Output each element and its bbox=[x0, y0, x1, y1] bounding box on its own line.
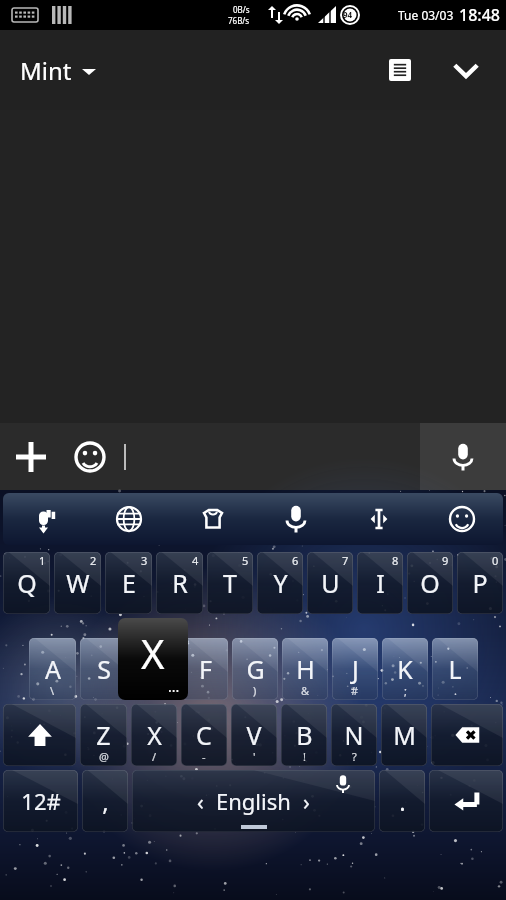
staticText: English bbox=[216, 786, 291, 816]
button[interactable]: W bbox=[54, 552, 101, 614]
staticText: 94 bbox=[343, 9, 353, 20]
button[interactable]: Add bbox=[0, 426, 62, 488]
staticText: R bbox=[172, 566, 188, 600]
staticText: , bbox=[102, 785, 109, 818]
staticText: ? bbox=[352, 749, 357, 764]
button[interactable]: U bbox=[307, 552, 353, 614]
staticText: S bbox=[97, 652, 111, 686]
button[interactable]: T bbox=[207, 552, 253, 614]
staticText: V bbox=[246, 718, 262, 752]
staticText: ; bbox=[404, 683, 407, 698]
button[interactable]: 12# bbox=[3, 770, 78, 832]
button[interactable]: X bbox=[131, 704, 177, 766]
staticText: @ bbox=[99, 749, 109, 764]
staticText: 0 bbox=[492, 553, 499, 568]
staticText: O bbox=[420, 566, 440, 600]
staticText: X bbox=[147, 718, 162, 752]
staticText: G bbox=[246, 652, 265, 686]
staticText: N bbox=[344, 718, 364, 752]
staticText: Y bbox=[273, 566, 288, 600]
button[interactable]: Theme bbox=[171, 493, 254, 545]
button[interactable]: V bbox=[231, 704, 277, 766]
staticText: 4 bbox=[192, 553, 199, 568]
button[interactable]: ‹ bbox=[132, 770, 375, 832]
staticText: M bbox=[393, 718, 416, 752]
button[interactable]: C bbox=[181, 704, 227, 766]
staticText: 5 bbox=[242, 553, 249, 568]
button[interactable]: Backspace bbox=[431, 704, 503, 766]
staticText: # bbox=[351, 683, 359, 698]
button[interactable]: Emoji bbox=[62, 429, 118, 485]
staticText: T bbox=[223, 566, 237, 600]
button[interactable]: Q bbox=[3, 552, 50, 614]
staticText: 8 bbox=[392, 553, 399, 568]
staticText: 6 bbox=[292, 553, 299, 568]
staticText: A bbox=[45, 652, 61, 686]
staticText: . bbox=[399, 785, 406, 818]
button[interactable]: F bbox=[182, 638, 228, 700]
staticText: J bbox=[352, 652, 359, 686]
staticText: L bbox=[448, 652, 462, 686]
staticText: › bbox=[303, 786, 310, 816]
staticText: D bbox=[145, 652, 164, 686]
button[interactable]: L bbox=[432, 638, 478, 700]
button[interactable]: G bbox=[232, 638, 278, 700]
staticText: K bbox=[397, 652, 413, 686]
staticText: 7 bbox=[342, 553, 349, 568]
button[interactable]: P bbox=[457, 552, 503, 614]
staticText: B bbox=[296, 718, 313, 752]
staticText: ) bbox=[253, 683, 257, 698]
staticText: X bbox=[141, 626, 165, 680]
button[interactable]: Mint bbox=[14, 48, 102, 93]
button[interactable]: O bbox=[407, 552, 453, 614]
staticText: 76B/s bbox=[228, 15, 250, 26]
button[interactable]: E bbox=[105, 552, 152, 614]
button[interactable]: B bbox=[281, 704, 327, 766]
button[interactable]: D bbox=[131, 638, 178, 700]
button[interactable]: Cursor bbox=[337, 493, 420, 545]
staticText: F bbox=[199, 652, 212, 686]
staticText: 0B/s bbox=[233, 4, 250, 15]
staticText: - bbox=[202, 749, 206, 764]
staticText: Tue 03/03 bbox=[398, 7, 454, 23]
staticText: 12# bbox=[21, 786, 61, 816]
staticText: H bbox=[296, 652, 315, 686]
staticText: ! bbox=[303, 749, 306, 764]
button[interactable]: Shift bbox=[3, 704, 76, 766]
staticText: & bbox=[301, 683, 310, 698]
button[interactable]: Collapse bbox=[442, 46, 490, 94]
button[interactable]: , bbox=[82, 770, 128, 832]
button[interactable]: Gesture bbox=[3, 493, 87, 545]
button[interactable]: Emoji bbox=[420, 493, 503, 545]
staticText: Q bbox=[17, 566, 37, 600]
staticText: / bbox=[152, 749, 157, 764]
button[interactable]: Voice input bbox=[420, 423, 506, 490]
button[interactable]: Z bbox=[80, 704, 127, 766]
button[interactable]: N bbox=[331, 704, 377, 766]
button[interactable]: Y bbox=[257, 552, 303, 614]
staticText: 3 bbox=[141, 553, 148, 568]
button[interactable]: Language bbox=[87, 493, 171, 545]
button[interactable]: Enter bbox=[429, 770, 503, 832]
staticText: ... bbox=[168, 677, 180, 696]
button[interactable]: . bbox=[379, 770, 425, 832]
button[interactable]: A bbox=[29, 638, 76, 700]
button[interactable]: H bbox=[282, 638, 328, 700]
staticText: Mint bbox=[20, 54, 72, 87]
button[interactable]: List bbox=[376, 46, 424, 94]
button[interactable]: J bbox=[332, 638, 378, 700]
button[interactable]: R bbox=[156, 552, 203, 614]
staticText: ‹ bbox=[197, 786, 204, 816]
staticText: . bbox=[454, 683, 457, 698]
button[interactable]: S bbox=[80, 638, 127, 700]
button[interactable]: I bbox=[357, 552, 403, 614]
button[interactable]: K bbox=[382, 638, 428, 700]
staticText: Z bbox=[96, 718, 111, 752]
button[interactable]: Voice bbox=[254, 493, 337, 545]
staticText: E bbox=[122, 566, 136, 600]
staticText: \ bbox=[50, 683, 55, 698]
button[interactable]: M bbox=[381, 704, 427, 766]
staticText: 18:48 bbox=[459, 4, 500, 26]
staticText: 2 bbox=[90, 553, 97, 568]
staticText: C bbox=[196, 718, 212, 752]
